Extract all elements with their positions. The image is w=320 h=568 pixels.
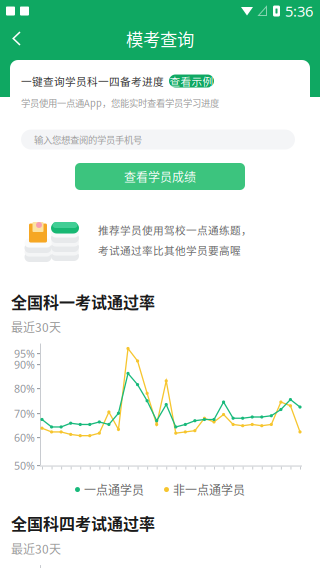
staticText: 90% (14, 357, 35, 372)
staticText: 考试通过率比其他学员要高喔 (98, 242, 241, 258)
staticText: 一键查询学员科一四备考进度 (21, 73, 164, 89)
staticText: 查看示例 (169, 73, 213, 89)
staticText: 5:36 (285, 1, 313, 21)
staticText: 推荐学员使用驾校一点通练题， (98, 222, 252, 237)
staticText: 70% (14, 406, 35, 421)
staticText: 模考查询 (126, 26, 194, 51)
staticText: 全国科一考试通过率 (11, 290, 155, 313)
staticText: 查看学员成绩 (124, 168, 196, 185)
staticText: 学员使用一点通App，您能实时查看学员学习进度 (21, 96, 219, 109)
staticText: 50% (14, 458, 35, 473)
staticText: 非一点通学员 (173, 481, 245, 498)
button[interactable]: Back (0, 21, 38, 56)
staticText: 最近30天 (11, 318, 61, 336)
staticText: 60% (14, 430, 35, 445)
staticText: 95% (14, 346, 35, 361)
button[interactable]: 查看学员成绩 (75, 163, 245, 190)
staticText: 最近30天 (11, 540, 61, 557)
staticText: 一点通学员 (84, 481, 144, 498)
staticText: 输入您想查阅的学员手机号 (34, 133, 142, 146)
button[interactable]: 查看示例 (169, 74, 214, 87)
staticText: 80% (14, 381, 35, 396)
staticText: 全国科四考试通过率 (11, 511, 155, 535)
